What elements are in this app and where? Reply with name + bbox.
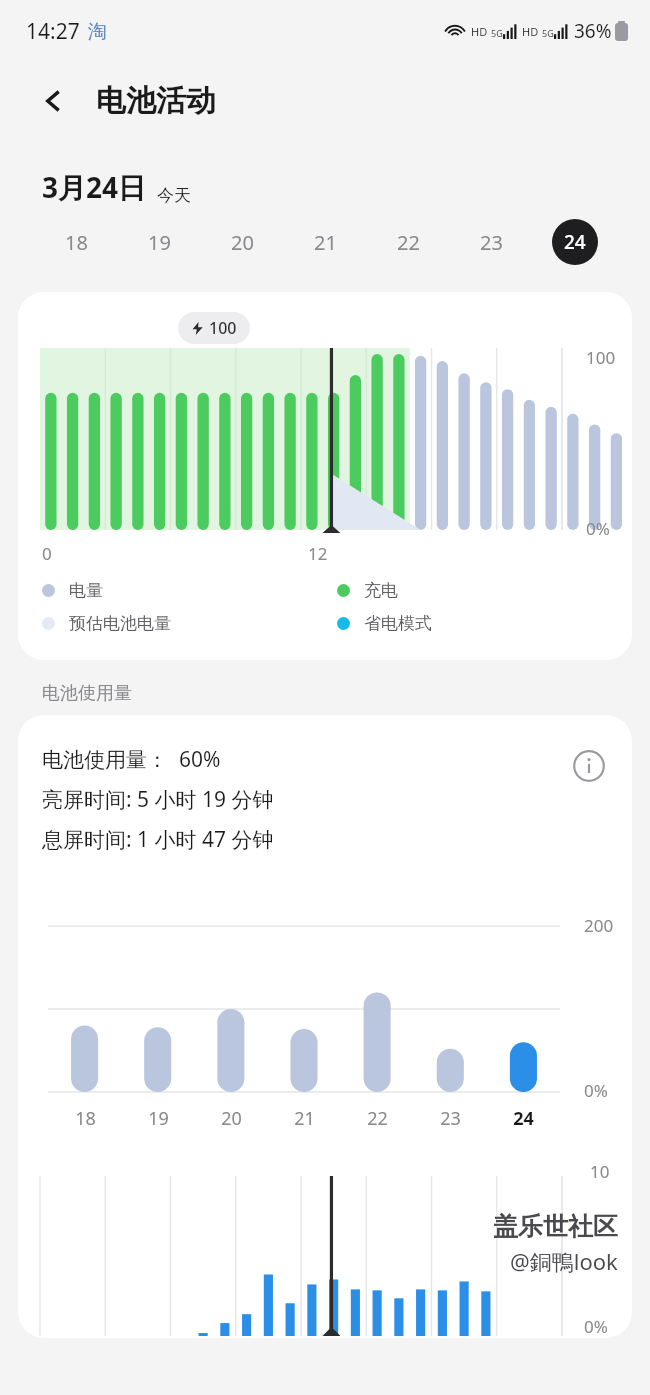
- staticText: 23: [480, 229, 503, 256]
- staticText: 5G: [491, 27, 503, 39]
- staticText: 0%: [584, 1315, 608, 1338]
- staticText: 今天: [157, 185, 191, 206]
- staticText: 24: [513, 1106, 534, 1131]
- staticText: 19: [148, 229, 171, 256]
- staticText: 充电: [364, 580, 398, 601]
- button[interactable]: 24: [533, 212, 616, 272]
- staticText: 0: [42, 542, 52, 565]
- staticText: HD: [471, 24, 488, 39]
- button[interactable]: 21: [284, 212, 367, 272]
- staticText: 100: [586, 346, 616, 369]
- staticText: 21: [294, 1106, 315, 1131]
- staticText: 20: [221, 1106, 242, 1131]
- staticText: 电池使用量: [42, 682, 132, 705]
- staticText: 亮屏时间: 5 小时 19 分钟: [42, 785, 274, 814]
- staticText: 22: [397, 229, 420, 256]
- staticText: 22: [367, 1106, 388, 1131]
- button[interactable]: Back: [30, 77, 78, 125]
- staticText: 21: [314, 229, 337, 256]
- button[interactable]: 18: [34, 212, 118, 272]
- staticText: 23: [440, 1106, 461, 1131]
- staticText: 淘: [88, 20, 107, 44]
- staticText: 19: [148, 1106, 169, 1131]
- staticText: 24: [564, 229, 586, 255]
- button[interactable]: 电池使用量： 60%: [18, 715, 632, 1338]
- staticText: 0%: [584, 1079, 608, 1102]
- staticText: 20: [231, 229, 254, 256]
- button[interactable]: Info: [568, 745, 610, 787]
- staticText: 36%: [574, 18, 612, 44]
- staticText: 电量: [69, 580, 103, 601]
- staticText: 电池使用量： 60%: [42, 745, 221, 774]
- staticText: 14:27: [26, 17, 80, 46]
- button[interactable]: 20: [201, 212, 284, 272]
- staticText: 5G: [542, 27, 554, 39]
- staticText: 3月24日: [42, 168, 147, 206]
- staticText: 预估电池电量: [69, 613, 171, 634]
- button[interactable]: 19: [118, 212, 201, 272]
- staticText: 100: [209, 317, 237, 339]
- staticText: 12: [308, 542, 328, 565]
- staticText: 电池活动: [96, 82, 216, 120]
- staticText: 盖乐世社区: [493, 1211, 618, 1242]
- staticText: HD: [522, 24, 539, 39]
- staticText: 0%: [586, 517, 610, 540]
- staticText: 省电模式: [364, 613, 432, 634]
- staticText: 10: [590, 1160, 610, 1183]
- staticText: 18: [75, 1106, 96, 1131]
- staticText: @銅鴨look: [510, 1246, 618, 1276]
- button[interactable]: 100: [18, 292, 632, 660]
- button[interactable]: 22: [367, 212, 450, 272]
- staticText: 18: [65, 229, 88, 256]
- button[interactable]: 23: [450, 212, 533, 272]
- staticText: 息屏时间: 1 小时 47 分钟: [42, 825, 274, 854]
- staticText: 200: [584, 914, 614, 937]
